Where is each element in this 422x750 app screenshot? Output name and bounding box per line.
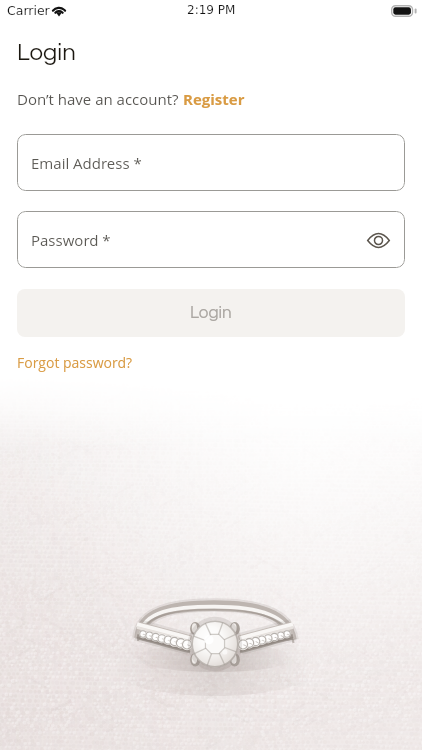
- staticText: Don’t have an account?: [17, 89, 183, 109]
- staticText: Login: [17, 40, 76, 65]
- staticText: Carrier: [7, 3, 50, 18]
- staticText: Register: [183, 89, 245, 109]
- staticText: Login: [190, 304, 232, 322]
- button[interactable]: Register: [183, 89, 245, 109]
- button[interactable]: Password *: [17, 211, 405, 268]
- button[interactable]: Login: [17, 289, 405, 337]
- button[interactable]: Show password: [363, 225, 393, 255]
- staticText: Forgot password?: [17, 353, 133, 372]
- button[interactable]: Email Address *: [17, 134, 405, 191]
- staticText: Password *: [31, 230, 111, 250]
- staticText: 2:19 PM: [187, 3, 236, 17]
- staticText: Email Address *: [31, 153, 142, 173]
- button[interactable]: Forgot password?: [17, 353, 133, 372]
